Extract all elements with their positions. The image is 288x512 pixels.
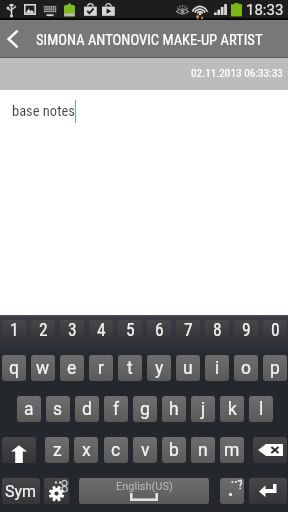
staticText: 7 [184, 320, 193, 340]
button[interactable]: 5 [118, 320, 142, 340]
staticText: 3 [68, 320, 77, 340]
button[interactable]: u [176, 355, 200, 381]
staticText: 2 [39, 320, 48, 340]
staticText: p [270, 358, 280, 379]
button[interactable]: v [133, 437, 157, 463]
button[interactable]: i [205, 355, 229, 381]
staticText: v [141, 440, 150, 461]
staticText: z [53, 440, 62, 461]
button[interactable]: 8 [205, 320, 229, 340]
button[interactable]: Period [220, 478, 244, 504]
staticText: x [82, 440, 91, 461]
staticText: 5 [126, 320, 135, 340]
button[interactable]: d [75, 396, 99, 422]
button[interactable]: f [104, 396, 128, 422]
staticText: t [127, 358, 133, 379]
button[interactable]: g [133, 396, 157, 422]
button[interactable]: Shift [2, 437, 36, 463]
button[interactable]: Sym [2, 478, 40, 504]
staticText: 0 [271, 320, 280, 340]
staticText: 18:33 [246, 1, 284, 19]
staticText: Sym [5, 482, 37, 501]
button[interactable]: Settings [44, 478, 69, 504]
button[interactable]: 1 [2, 320, 26, 340]
button[interactable]: j [191, 396, 215, 422]
staticText: s [53, 399, 63, 420]
button[interactable]: Space [79, 478, 209, 504]
button[interactable]: n [191, 437, 215, 463]
button[interactable]: 2 [31, 320, 55, 340]
staticText: g [140, 399, 150, 420]
staticText: d [82, 399, 92, 420]
button[interactable]: z [45, 437, 69, 463]
button[interactable]: 7 [176, 320, 200, 340]
staticText: 4 [97, 320, 106, 340]
staticText: r [98, 358, 104, 379]
button[interactable]: o [234, 355, 258, 381]
staticText: b [169, 440, 179, 461]
staticText: k [228, 399, 237, 420]
button[interactable]: y [147, 355, 171, 381]
button[interactable]: a [17, 396, 41, 422]
button[interactable]: 3 [60, 320, 84, 340]
button[interactable]: x [74, 437, 98, 463]
button[interactable]: Backspace [253, 437, 287, 463]
staticText: f [113, 399, 120, 420]
button[interactable]: 0 [263, 320, 287, 340]
staticText: 02.11.2013 06:33:33 [191, 67, 283, 80]
button[interactable]: 6 [147, 320, 171, 340]
staticText: base notes [12, 103, 75, 120]
button[interactable]: s [46, 396, 70, 422]
button[interactable]: h [162, 396, 186, 422]
staticText: j [201, 399, 206, 420]
staticText: e [67, 358, 77, 379]
staticText: 8 [213, 320, 222, 340]
staticText: 6 [155, 320, 164, 340]
button[interactable]: l [249, 396, 273, 422]
staticText: q [9, 358, 19, 379]
button[interactable]: k [220, 396, 244, 422]
button[interactable]: t [118, 355, 142, 381]
staticText: l [259, 399, 264, 420]
staticText: SIMONA ANTONOVIC MAKE-UP ARTIST [36, 31, 263, 48]
staticText: 1 [10, 320, 19, 340]
button[interactable]: Enter [249, 478, 287, 504]
staticText: o [241, 358, 251, 379]
staticText: i [215, 358, 220, 379]
button[interactable]: m [220, 437, 244, 463]
staticText: w [36, 358, 50, 379]
staticText: 9 [242, 320, 251, 340]
button[interactable]: Back [0, 20, 30, 58]
button[interactable]: q [2, 355, 26, 381]
staticText: c [111, 440, 121, 461]
staticText: u [183, 358, 193, 379]
button[interactable]: b [162, 437, 186, 463]
staticText: h [169, 399, 179, 420]
button[interactable]: r [89, 355, 113, 381]
button[interactable]: 4 [89, 320, 113, 340]
button[interactable]: 9 [234, 320, 258, 340]
staticText: English(US) [116, 480, 173, 493]
staticText: y [155, 358, 164, 379]
staticText: m [224, 440, 240, 461]
button[interactable]: w [31, 355, 55, 381]
button[interactable]: c [104, 437, 128, 463]
button[interactable]: e [60, 355, 84, 381]
staticText: a [24, 399, 34, 420]
button[interactable]: p [263, 355, 287, 381]
staticText: n [198, 440, 208, 461]
